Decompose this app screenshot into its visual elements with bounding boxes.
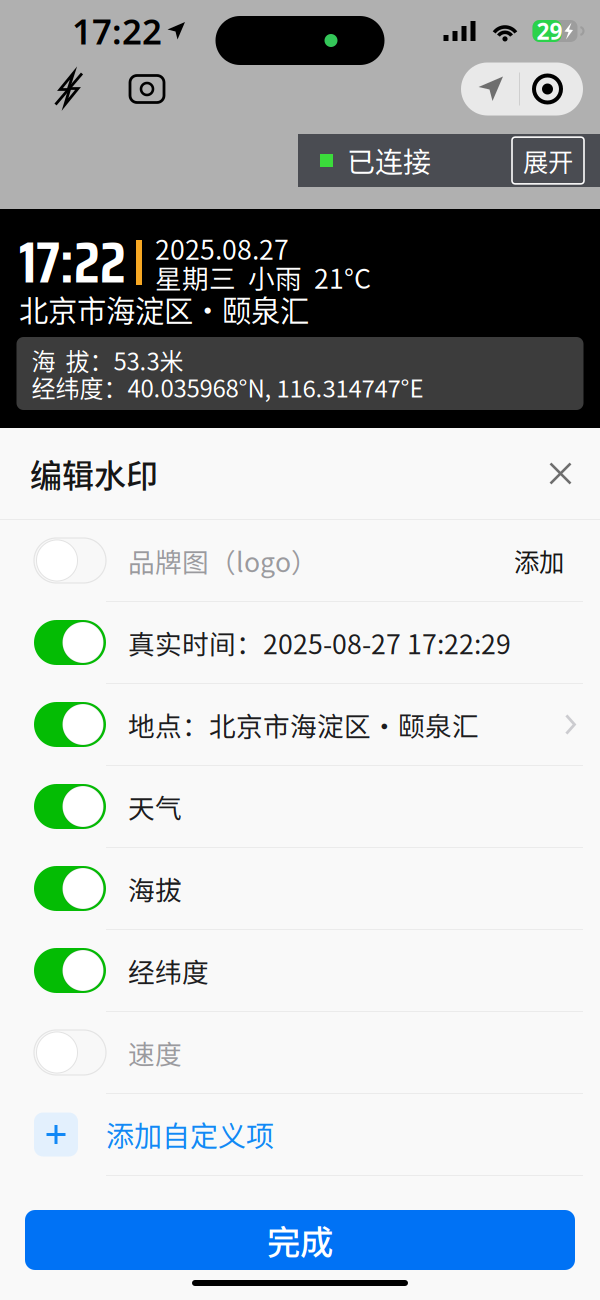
- button[interactable]: Flash off: [47, 66, 91, 112]
- button[interactable]: 地点：北京市海淀区·颐泉汇: [0, 684, 600, 766]
- button[interactable]: 真实时间：2025-08-27 17:22:29: [0, 602, 600, 684]
- button[interactable]: Location and focus mode: [461, 62, 583, 115]
- button[interactable]: 海拔: [0, 848, 600, 930]
- staticText: 星期三 小雨 21°C: [155, 258, 371, 296]
- staticText: 添加自定义项: [106, 1114, 274, 1155]
- button[interactable]: Close: [533, 446, 588, 501]
- button[interactable]: 速度: [0, 1012, 600, 1094]
- staticText: 真实时间：2025-08-27 17:22:29: [128, 623, 511, 662]
- button[interactable]: 经纬度: [0, 930, 600, 1012]
- staticText: 已连接: [347, 140, 431, 181]
- staticText: 速度: [128, 1033, 182, 1072]
- button[interactable]: 品牌图（logo）: [0, 520, 600, 602]
- button[interactable]: 添加自定义项: [0, 1094, 600, 1176]
- button[interactable]: Switch camera: [125, 66, 169, 112]
- staticText: 17:22: [72, 8, 162, 54]
- staticText: 17:22: [19, 217, 126, 308]
- staticText: 编辑水印: [30, 450, 158, 497]
- staticText: 29: [536, 16, 562, 46]
- staticText: 完成: [267, 1216, 333, 1264]
- staticText: 天气: [128, 787, 182, 826]
- staticText: 海 拔：53.3米: [31, 343, 183, 377]
- staticText: 海拔: [128, 869, 182, 908]
- staticText: 2025.08.27: [155, 229, 289, 267]
- staticText: 添加: [514, 542, 564, 579]
- button[interactable]: 完成: [25, 1210, 575, 1270]
- staticText: 展开: [523, 142, 573, 179]
- staticText: 经纬度：40.035968°N, 116.314747°E: [31, 370, 423, 404]
- staticText: 北京市海淀区・颐泉汇: [19, 288, 309, 330]
- staticText: 品牌图（logo）: [128, 541, 318, 580]
- staticText: 地点：北京市海淀区·颐泉汇: [128, 705, 479, 744]
- button[interactable]: 天气: [0, 766, 600, 848]
- button[interactable]: 展开: [512, 137, 584, 184]
- staticText: 经纬度: [128, 951, 209, 990]
